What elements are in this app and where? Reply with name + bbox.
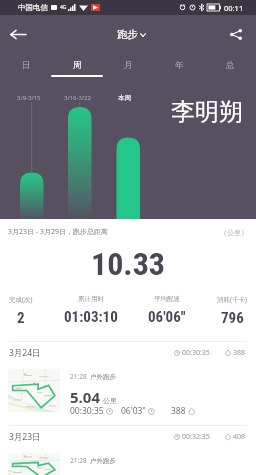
staticText: 00:11 <box>224 3 244 13</box>
button[interactable]: 21:28 <box>0 448 256 475</box>
button[interactable]: 月 <box>103 53 154 77</box>
staticText: （公里） <box>220 228 248 237</box>
staticText: 中国电信 <box>18 3 48 12</box>
button[interactable]: Back <box>4 20 32 48</box>
staticText: 3/9-3/15 <box>17 94 41 102</box>
staticText: 3月23日 - 3月29日，跑步总距离 <box>8 227 108 237</box>
staticText: 06'03" <box>121 405 146 417</box>
button[interactable]: 跑步 <box>117 28 146 41</box>
staticText: 户外跑步 <box>90 373 116 381</box>
staticText: 10.33 <box>0 245 256 283</box>
staticText: 公里 <box>103 396 117 405</box>
staticText: 408 <box>233 432 246 442</box>
staticText: 累计用时 <box>78 295 104 303</box>
staticText: 3月23日 <box>9 431 41 443</box>
staticText: 户外跑步 <box>90 457 116 465</box>
staticText: 日 <box>22 60 31 71</box>
staticText: 00:30:35 <box>70 405 104 417</box>
staticText: 21:28 <box>70 456 87 465</box>
staticText: 平均配速 <box>154 295 180 303</box>
staticText: 月 <box>124 60 133 71</box>
button[interactable]: 日 <box>0 53 52 77</box>
staticText: 21:28 <box>70 372 87 381</box>
staticText: 2 <box>17 309 25 327</box>
staticText: 06'06'' <box>148 308 186 326</box>
staticText: 00:30:35 <box>182 348 210 358</box>
staticText: 796 <box>221 309 244 327</box>
staticText: 01:03:10 <box>64 308 118 326</box>
staticText: 3/16-3/22 <box>64 94 91 102</box>
staticText: 跑步 <box>117 28 138 41</box>
staticText: 3月24日 <box>9 347 41 359</box>
staticText: 周 <box>73 60 82 71</box>
button[interactable]: 总 <box>205 53 256 77</box>
staticText: 388 <box>233 348 246 358</box>
button[interactable]: 周 <box>52 53 103 77</box>
staticText: 5.04 <box>70 387 100 407</box>
staticText: 总 <box>226 60 235 71</box>
staticText: 消耗(千卡) <box>217 295 247 304</box>
button[interactable]: 年 <box>154 53 205 77</box>
staticText: 完成(次) <box>9 295 33 304</box>
staticText: 本周 <box>118 94 131 102</box>
button[interactable]: Share <box>224 22 248 46</box>
staticText: 388 <box>171 405 186 417</box>
staticText: 4G <box>60 4 67 11</box>
staticText: 00:32:35 <box>182 432 210 442</box>
button[interactable]: 21:28 <box>0 364 256 414</box>
staticText: 年 <box>175 60 184 71</box>
staticText: 李明朔 <box>171 97 243 127</box>
